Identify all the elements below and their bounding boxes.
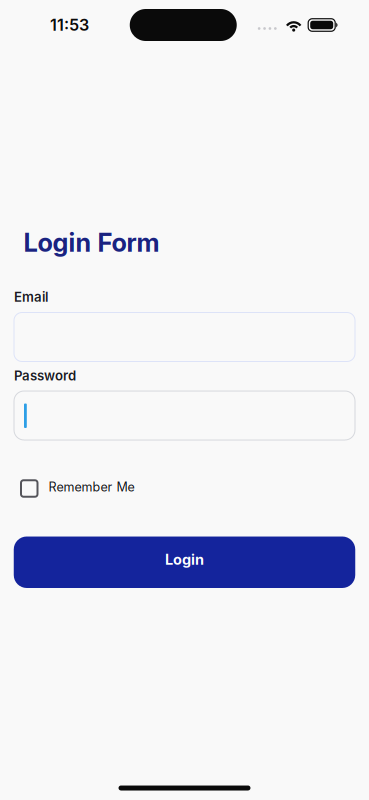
staticText: Password — [14, 368, 76, 384]
staticText: Remember Me — [48, 479, 134, 494]
button[interactable]: Remember Me — [0, 479, 369, 497]
button[interactable]: Login — [14, 536, 355, 588]
button[interactable]: Password — [14, 391, 355, 440]
staticText: Login Form — [23, 227, 159, 258]
staticText: Login — [165, 551, 204, 568]
staticText: Email — [14, 289, 48, 305]
button[interactable]: Email — [14, 312, 355, 361]
staticText: 11:53 — [50, 15, 89, 35]
